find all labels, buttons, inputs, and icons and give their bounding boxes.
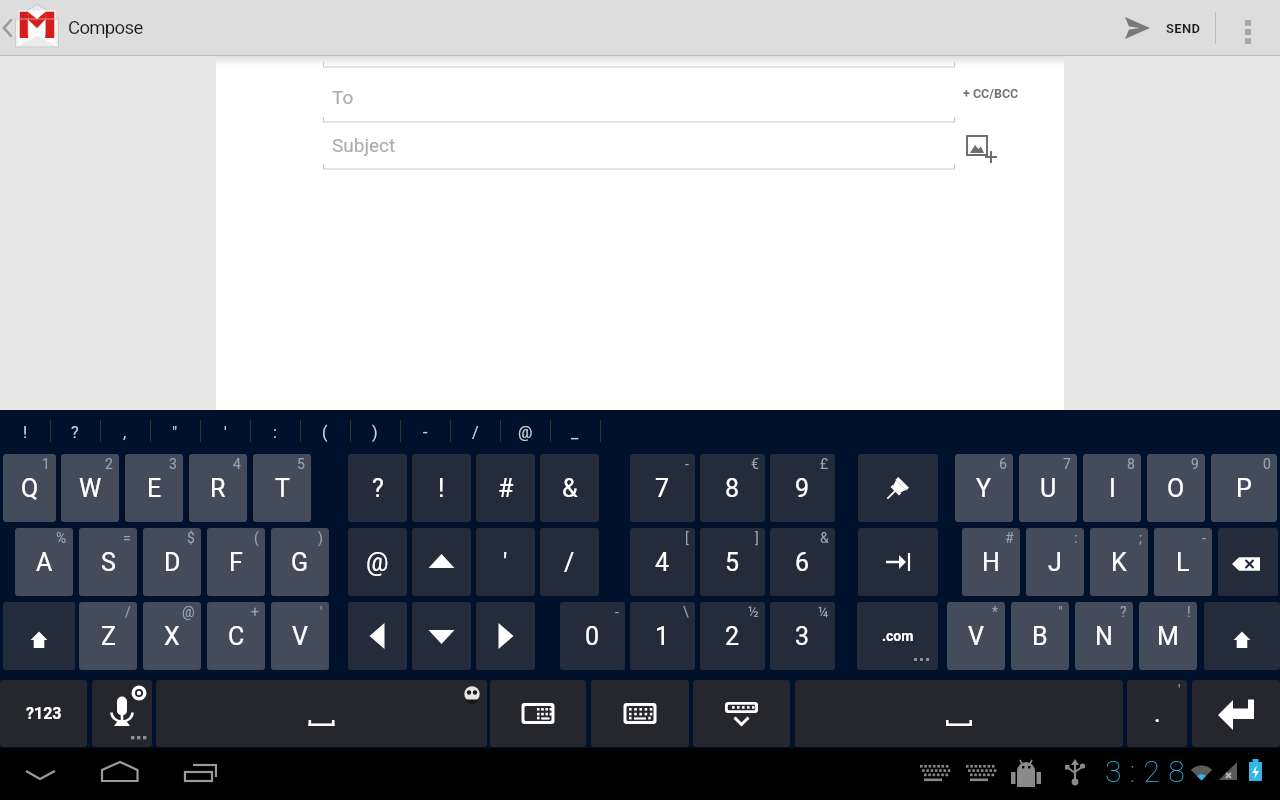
button[interactable]: spaceEmoji [156,680,487,747]
button[interactable]: M [1139,602,1197,670]
button[interactable]: Attach image [963,130,997,164]
button[interactable]: D [143,528,201,596]
button[interactable]: down [412,602,471,670]
button[interactable]: B [1011,602,1069,670]
button[interactable]: V [947,602,1005,670]
staticText: 3 [169,456,177,472]
button[interactable]: up [412,528,471,596]
button[interactable]: 1 [630,602,695,670]
button[interactable]: enter [1192,680,1280,747]
button[interactable]: 7 [630,454,695,522]
staticText: ! [438,474,445,503]
button[interactable]: O [1147,454,1205,522]
button[interactable]: X [143,602,201,670]
button[interactable]: shift [1204,602,1280,670]
button[interactable]: 4 [630,528,695,596]
button[interactable]: L [1154,528,1212,596]
button[interactable]: / [540,528,599,596]
button[interactable]: ' [200,410,250,454]
button[interactable]: U [1019,454,1077,522]
button[interactable]: " [150,410,200,454]
button[interactable]: # [476,454,535,522]
button[interactable]: E [125,454,183,522]
button[interactable]: mic [92,680,152,747]
button[interactable]: ? [50,410,100,454]
button[interactable]: right [476,602,535,670]
button[interactable]: kbdown [693,680,790,747]
button[interactable]: F [207,528,265,596]
button[interactable]: C [207,602,265,670]
button[interactable]: Z [79,602,137,670]
button[interactable]: Home [94,748,146,800]
button[interactable]: .com [857,602,938,670]
button[interactable]: More options [1216,0,1280,56]
button[interactable]: space [795,680,1123,747]
button[interactable]: R [189,454,247,522]
button[interactable]: G [271,528,329,596]
button[interactable]: . [1127,680,1187,747]
button[interactable]: - [400,410,450,454]
button[interactable]: @ [348,528,407,596]
staticText: " [1058,604,1063,620]
staticText: B [1032,622,1048,651]
button[interactable]: @ [500,410,550,454]
button[interactable]: 2 [700,602,765,670]
staticText: K [1111,548,1127,577]
button[interactable]: A [15,528,73,596]
button[interactable]: _ [550,410,600,454]
staticText: Q [21,474,39,503]
staticText: V [292,622,308,651]
button[interactable]: H [962,528,1020,596]
button[interactable]: Back [14,748,66,800]
button[interactable]: W [61,454,119,522]
button[interactable]: / [450,410,500,454]
staticText: 8 [725,474,740,503]
button[interactable]: kb1 [490,680,586,747]
button[interactable]: V [271,602,329,670]
button[interactable]: bksp [1218,528,1278,596]
staticText: ( [254,530,259,546]
button[interactable]: S [79,528,137,596]
button[interactable]: , [100,410,150,454]
button[interactable]: Recent apps [178,748,230,800]
button[interactable]: pin [858,454,938,522]
button[interactable]: Y [955,454,1013,522]
button[interactable]: Q [3,454,56,522]
button[interactable]: I [1083,454,1141,522]
button[interactable]: P [1211,454,1277,522]
button[interactable]: ! [0,410,50,454]
button[interactable]: 6 [770,528,835,596]
button[interactable]: & [540,454,599,522]
staticText: - [615,604,619,620]
button[interactable]: ! [412,454,471,522]
button[interactable]: kb2 [591,680,689,747]
button[interactable]: Compose [0,0,143,56]
button[interactable]: 8 [700,454,765,522]
staticText: Compose [68,17,143,39]
button[interactable]: ( [300,410,350,454]
button[interactable]: N [1075,602,1133,670]
staticText: 9 [1191,456,1199,472]
button[interactable]: Subject [325,129,825,169]
button[interactable]: ?123 [0,680,87,747]
button[interactable]: ? [348,454,407,522]
button[interactable]: : [250,410,300,454]
button[interactable]: + CC/BCC [959,82,1023,105]
button[interactable]: K [1090,528,1148,596]
button[interactable]: To [325,81,825,121]
button[interactable]: SEND [1117,0,1215,56]
button[interactable]: ) [350,410,400,454]
button[interactable]: 3 [770,602,835,670]
button[interactable]: J [1026,528,1084,596]
button[interactable]: 5 [700,528,765,596]
button[interactable]: tab [858,528,938,596]
button[interactable]: left [348,602,407,670]
staticText: [ [685,530,689,546]
button[interactable]: 9 [770,454,835,522]
button[interactable]: T [253,454,311,522]
staticText: ) [372,423,378,442]
staticText: @ [366,548,389,577]
button[interactable]: 0 [560,602,625,670]
button[interactable]: ' [476,528,535,596]
button[interactable]: shift [3,602,75,670]
